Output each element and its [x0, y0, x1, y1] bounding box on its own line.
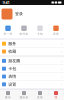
staticText: 服务: [8, 41, 16, 46]
button[interactable]: 表情: [48, 25, 64, 35]
staticText: 表情: [8, 74, 16, 79]
staticText: ›: [61, 82, 62, 87]
staticText: 卡包: [37, 32, 43, 35]
staticText: 9:41: [2, 0, 9, 5]
staticText: ›: [61, 41, 62, 46]
button[interactable]: 服务: [0, 40, 64, 47]
button[interactable]: 朋友圈: [0, 57, 64, 65]
staticText: 发现: [37, 96, 43, 99]
button[interactable]: 卡包: [32, 25, 48, 35]
staticText: 收付款: [19, 32, 28, 35]
staticText: 收藏: [8, 49, 16, 54]
button[interactable]: 发现: [32, 91, 48, 99]
staticText: 我: [54, 96, 57, 99]
button[interactable]: 收藏: [0, 48, 64, 55]
button[interactable]: 通讯录: [16, 91, 32, 99]
staticText: 登录: [15, 11, 23, 16]
button[interactable]: 表情: [0, 73, 64, 80]
staticText: ›: [61, 66, 62, 71]
staticText: 通讯录: [19, 96, 28, 99]
staticText: ›: [61, 49, 62, 54]
staticText: 表情: [53, 32, 59, 35]
button[interactable]: 设置: [0, 81, 64, 88]
button[interactable]: 微信: [0, 91, 16, 99]
staticText: 扫一扫: [3, 32, 12, 35]
button[interactable]: 扫一扫: [0, 25, 16, 35]
staticText: 卡包: [8, 66, 16, 71]
button[interactable]: 我: [48, 91, 64, 99]
staticText: 朋友圈: [8, 58, 20, 63]
button[interactable]: 卡包: [0, 65, 64, 72]
button[interactable]: 登录: [0, 5, 64, 23]
staticText: ›: [61, 74, 62, 79]
staticText: ›: [61, 58, 62, 63]
button[interactable]: 收付款: [16, 25, 32, 35]
staticText: 设置: [8, 82, 16, 87]
staticText: 微信: [5, 96, 11, 99]
